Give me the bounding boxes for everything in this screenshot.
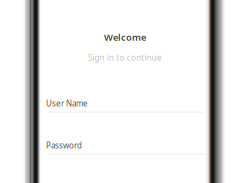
staticText: Welcome (104, 31, 146, 43)
button[interactable]: Password (40, 140, 208, 155)
button[interactable]: User Name (40, 98, 208, 113)
staticText: Password (46, 140, 82, 151)
staticText: User Name (46, 98, 88, 109)
staticText: Sign in to continue (88, 52, 162, 63)
